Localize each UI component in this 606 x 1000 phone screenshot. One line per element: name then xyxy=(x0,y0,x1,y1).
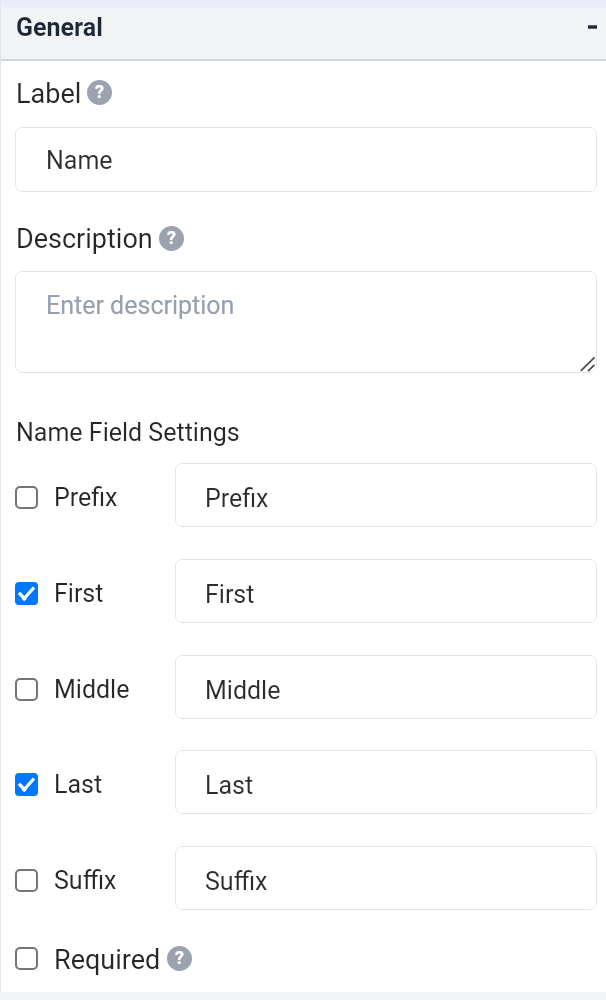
button[interactable] xyxy=(175,846,597,910)
staticText: Last xyxy=(54,770,103,799)
button[interactable] xyxy=(175,463,597,527)
button[interactable] xyxy=(175,750,597,814)
staticText: Suffix xyxy=(54,866,117,895)
button[interactable] xyxy=(15,127,597,192)
staticText: Enter description xyxy=(46,291,235,320)
staticText: Last xyxy=(205,771,254,800)
staticText: Description xyxy=(16,223,153,255)
staticText: Required xyxy=(54,944,161,976)
staticText: Prefix xyxy=(205,484,269,513)
staticText: ? xyxy=(167,227,176,248)
button[interactable] xyxy=(175,559,597,623)
staticText: Middle xyxy=(205,676,281,705)
button[interactable]: Suffix xyxy=(0,855,165,905)
staticText: First xyxy=(54,579,104,608)
button[interactable]: Last xyxy=(0,759,165,809)
button[interactable] xyxy=(175,655,597,719)
button[interactable] xyxy=(0,936,200,984)
staticText: Suffix xyxy=(205,867,268,896)
button[interactable]: Middle xyxy=(0,664,165,714)
staticText: ? xyxy=(95,81,104,102)
staticText: ? xyxy=(175,947,184,968)
staticText: Middle xyxy=(54,675,130,704)
staticText: Name xyxy=(46,146,113,175)
button[interactable]: Prefix xyxy=(0,472,165,522)
button[interactable]: General xyxy=(0,0,606,59)
button[interactable]: First xyxy=(0,568,165,618)
staticText: Prefix xyxy=(54,483,118,512)
button[interactable]: Help xyxy=(159,226,184,251)
staticText: Label xyxy=(16,78,82,110)
button[interactable]: Help xyxy=(167,946,192,971)
staticText: General xyxy=(16,13,103,42)
staticText: Name Field Settings xyxy=(16,418,240,447)
button[interactable]: Help xyxy=(87,80,112,105)
button[interactable] xyxy=(15,271,597,373)
button[interactable]: Collapse section xyxy=(562,0,606,59)
staticText: First xyxy=(205,580,255,609)
